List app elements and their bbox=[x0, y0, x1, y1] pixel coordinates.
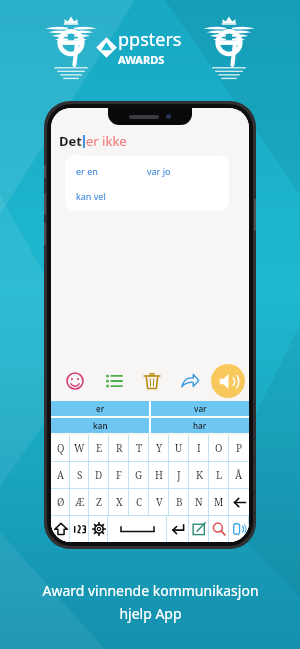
button[interactable]: V bbox=[149, 489, 169, 515]
button[interactable]: Numbers bbox=[70, 516, 89, 542]
button[interactable]: kan vel bbox=[76, 190, 147, 202]
button[interactable]: W bbox=[70, 435, 89, 461]
button[interactable]: har bbox=[151, 418, 249, 433]
button[interactable]: H bbox=[149, 462, 169, 488]
staticText: K bbox=[196, 468, 203, 482]
staticText: I bbox=[197, 441, 201, 455]
staticText: G bbox=[135, 468, 143, 482]
staticText: O bbox=[215, 441, 223, 455]
staticText: Award vinnende kommunikasjon bbox=[42, 581, 259, 600]
button[interactable]: N bbox=[189, 489, 209, 515]
staticText: L bbox=[216, 468, 223, 482]
button[interactable]: Settings bbox=[89, 516, 108, 542]
button[interactable]: M bbox=[209, 489, 229, 515]
staticText: E bbox=[96, 441, 103, 455]
staticText: X bbox=[116, 495, 123, 509]
staticText: Æ bbox=[75, 495, 85, 509]
staticText: P bbox=[236, 441, 243, 455]
staticText: er en bbox=[76, 165, 98, 177]
button[interactable]: X bbox=[109, 489, 129, 515]
button[interactable]: T bbox=[129, 435, 149, 461]
staticText: Y bbox=[156, 441, 163, 455]
staticText: H bbox=[155, 468, 163, 482]
button[interactable]: O bbox=[209, 435, 229, 461]
staticText: er bbox=[96, 403, 105, 414]
button[interactable]: Æ bbox=[70, 489, 89, 515]
staticText: C bbox=[136, 495, 143, 509]
button[interactable]: var jo bbox=[147, 165, 218, 177]
button[interactable]: B bbox=[169, 489, 189, 515]
button[interactable]: Z bbox=[89, 489, 109, 515]
button[interactable]: Delete bbox=[133, 361, 171, 401]
staticText: S bbox=[77, 468, 83, 482]
staticText: V bbox=[156, 495, 163, 509]
staticText: Q bbox=[57, 441, 65, 455]
button[interactable]: Share bbox=[171, 361, 209, 401]
button[interactable]: F bbox=[109, 462, 129, 488]
button[interactable]: A bbox=[51, 462, 70, 488]
button[interactable]: G bbox=[129, 462, 149, 488]
staticText: R bbox=[116, 441, 123, 455]
staticText: ppsters bbox=[118, 27, 182, 52]
button[interactable]: Shift bbox=[51, 516, 70, 542]
button[interactable]: E bbox=[89, 435, 109, 461]
button[interactable]: Ø bbox=[51, 489, 70, 515]
button[interactable]: Speak bbox=[209, 361, 247, 401]
staticText: B bbox=[176, 495, 183, 509]
staticText: AWARDS bbox=[118, 52, 165, 67]
staticText: kan bbox=[93, 420, 108, 431]
button[interactable]: Q bbox=[51, 435, 70, 461]
button[interactable]: L bbox=[209, 462, 229, 488]
staticText: T bbox=[136, 441, 143, 455]
button[interactable]: Y bbox=[149, 435, 169, 461]
button[interactable]: Search bbox=[209, 516, 229, 542]
staticText: har bbox=[193, 420, 207, 431]
staticText: er ikke bbox=[86, 132, 127, 150]
button[interactable]: U bbox=[169, 435, 189, 461]
button[interactable]: C bbox=[129, 489, 149, 515]
staticText: var bbox=[194, 403, 207, 414]
staticText: var jo bbox=[147, 165, 171, 177]
staticText: N bbox=[195, 495, 203, 509]
button[interactable]: kan bbox=[51, 418, 149, 433]
button[interactable]: R bbox=[109, 435, 129, 461]
staticText: kan vel bbox=[76, 190, 106, 202]
button[interactable]: Space bbox=[108, 516, 167, 542]
button[interactable]: var bbox=[151, 401, 249, 416]
staticText: F bbox=[116, 468, 122, 482]
staticText: A bbox=[57, 468, 65, 482]
staticText: hjelp App bbox=[119, 604, 182, 623]
button[interactable]: Compose bbox=[189, 516, 209, 542]
staticText: D bbox=[95, 468, 103, 482]
staticText: U bbox=[175, 441, 183, 455]
button[interactable]: J bbox=[169, 462, 189, 488]
staticText: Å bbox=[235, 468, 243, 482]
staticText: M bbox=[214, 495, 224, 509]
staticText: W bbox=[74, 441, 85, 455]
button[interactable]: P bbox=[229, 435, 249, 461]
button[interactable]: Phone bbox=[229, 516, 249, 542]
button[interactable]: er en bbox=[76, 165, 147, 177]
staticText: J bbox=[177, 468, 181, 482]
button[interactable]: I bbox=[189, 435, 209, 461]
staticText: Z bbox=[96, 495, 102, 509]
button[interactable]: Emoji bbox=[55, 361, 94, 401]
button[interactable]: er bbox=[51, 401, 149, 416]
button[interactable]: Enter bbox=[167, 516, 189, 542]
button[interactable]: K bbox=[189, 462, 209, 488]
button[interactable]: D bbox=[89, 462, 109, 488]
button[interactable] bbox=[229, 489, 249, 515]
staticText: Ø bbox=[57, 495, 65, 509]
button[interactable]: S bbox=[70, 462, 89, 488]
staticText: Det bbox=[59, 132, 82, 150]
button[interactable]: List bbox=[94, 361, 133, 401]
button[interactable]: Å bbox=[229, 462, 249, 488]
